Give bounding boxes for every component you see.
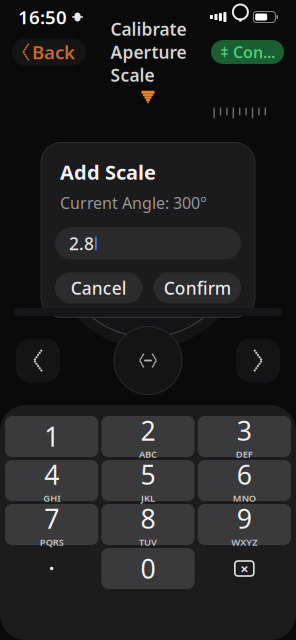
staticText: JKL: [141, 492, 155, 504]
staticText: 8: [140, 501, 155, 536]
staticText: DEF: [236, 448, 253, 460]
staticText: MNO: [233, 492, 256, 504]
staticText: ABC: [139, 448, 157, 460]
staticText: 1: [44, 419, 59, 454]
staticText: Confirm: [164, 276, 231, 299]
staticText: GHI: [43, 492, 60, 504]
staticText: 4: [44, 457, 59, 492]
staticText: 5: [140, 457, 155, 492]
button[interactable]: Con...: [211, 40, 284, 64]
button[interactable]: Delete: [198, 548, 291, 589]
staticText: Current Angle: 300°: [60, 192, 207, 213]
button[interactable]: Back: [12, 38, 86, 65]
button[interactable]: Cancel: [55, 272, 142, 303]
button[interactable]: 6: [198, 460, 291, 501]
staticText: 3: [237, 413, 252, 448]
button[interactable]: 8: [101, 504, 195, 545]
staticText: Back: [32, 40, 75, 64]
staticText: WXYZ: [231, 536, 257, 548]
button[interactable]: 4: [5, 460, 98, 501]
staticText: 0: [140, 551, 155, 586]
staticText: TUV: [139, 536, 157, 548]
button[interactable]: 7: [5, 504, 98, 545]
staticText: Con...: [233, 41, 275, 63]
button[interactable]: Next: [236, 338, 280, 382]
button[interactable]: 1: [5, 416, 98, 457]
button[interactable]: Previous: [16, 338, 60, 382]
staticText: ×: [240, 559, 248, 578]
staticText: Add Scale: [60, 159, 156, 185]
button[interactable]: Adjust range: [114, 326, 182, 394]
button[interactable]: 3: [198, 416, 291, 457]
staticText: Cancel: [71, 276, 127, 299]
button[interactable]: Decimal point: [5, 548, 98, 589]
staticText: 9: [237, 501, 252, 536]
button[interactable]: Confirm: [153, 272, 241, 303]
button[interactable]: 9: [198, 504, 291, 545]
staticText: 16:50: [18, 5, 67, 29]
button[interactable]: 5: [101, 460, 195, 501]
staticText: Calibrate Aperture Scale: [110, 17, 186, 87]
button[interactable]: 2: [101, 416, 195, 457]
staticText: 6: [237, 457, 252, 492]
staticText: 7: [44, 501, 59, 536]
staticText: PQRS: [40, 536, 64, 548]
staticText: 2: [140, 413, 155, 448]
staticText: 2.8: [69, 232, 94, 255]
button[interactable]: 0: [101, 548, 195, 589]
